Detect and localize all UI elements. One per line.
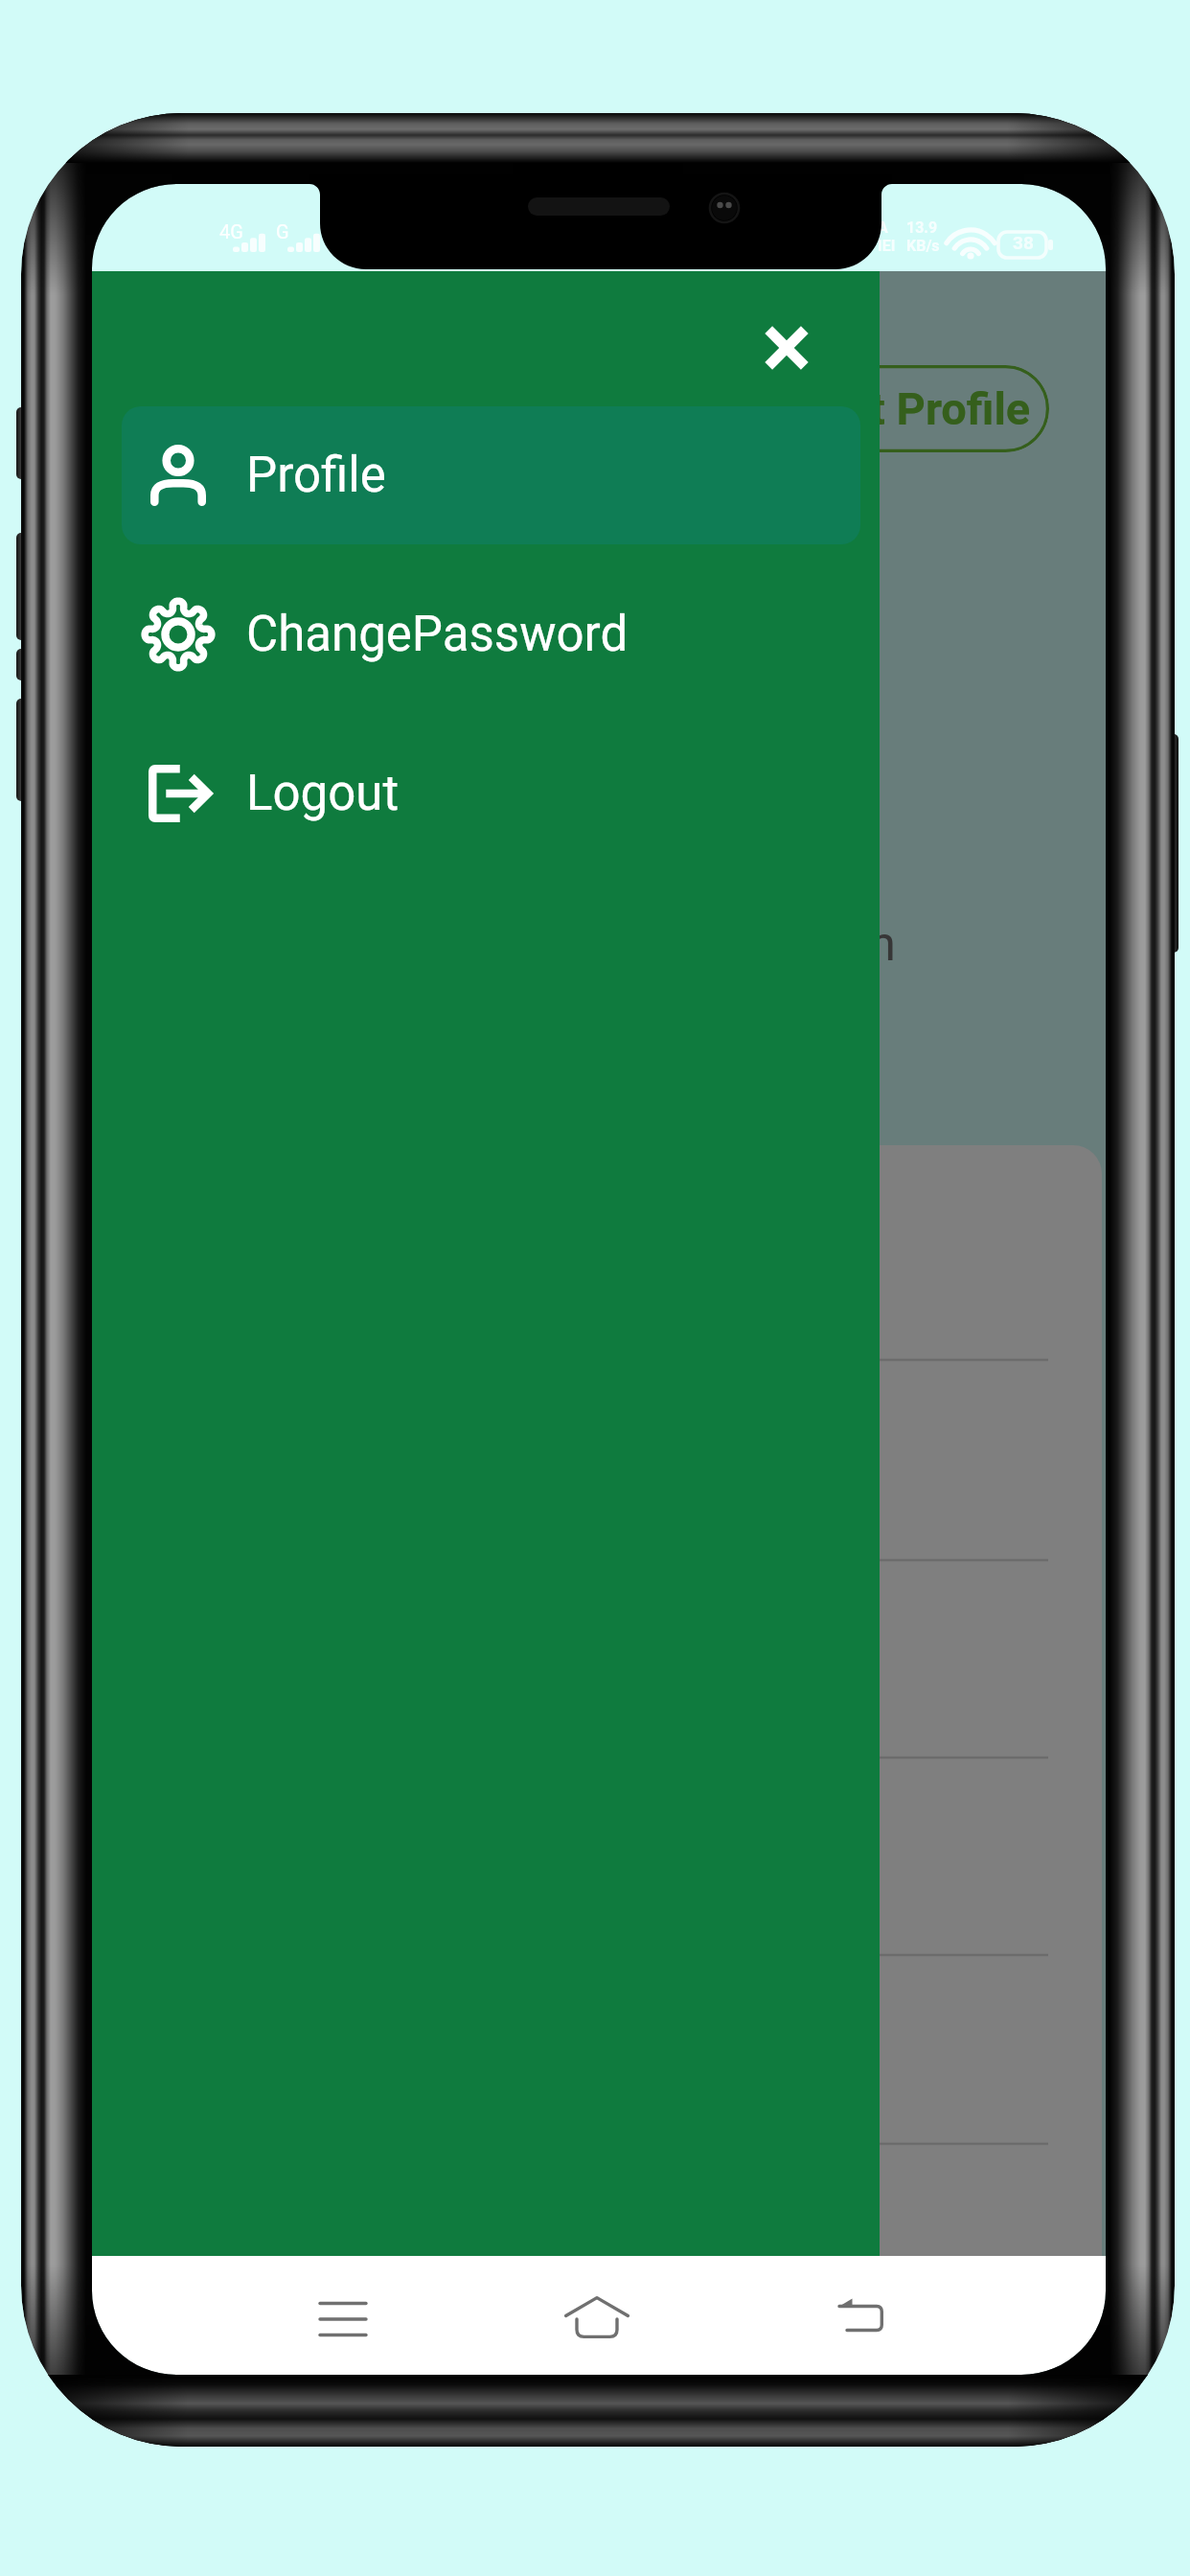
staticText: Logout: [246, 765, 400, 822]
staticText: G: [276, 220, 289, 242]
staticText: Edit Profile: [808, 382, 1031, 435]
button[interactable]: Close drawer: [729, 290, 844, 405]
staticText: A IEI: [878, 218, 896, 255]
staticText: Information: [647, 916, 896, 973]
button[interactable]: Back: [824, 2280, 897, 2353]
staticText: 38: [1013, 232, 1034, 253]
button[interactable]: Edit Profile: [771, 365, 1049, 452]
staticText: Profile: [246, 447, 386, 504]
button[interactable]: ChangePassword: [122, 565, 860, 703]
button[interactable]: Profile: [122, 406, 860, 544]
button[interactable]: Recent apps: [309, 2285, 378, 2354]
button[interactable]: Logout: [122, 724, 860, 862]
button[interactable]: Home: [561, 2281, 633, 2354]
staticText: ChangePassword: [246, 606, 629, 663]
staticText: 13.9 KB/s: [906, 218, 940, 255]
staticText: 4G: [219, 220, 243, 242]
